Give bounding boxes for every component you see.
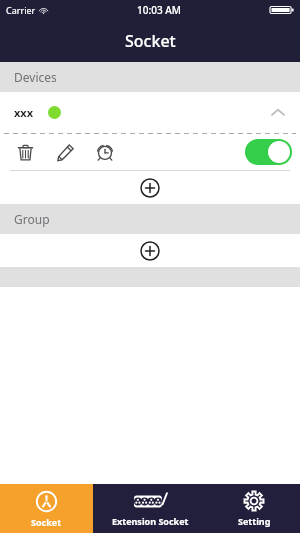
staticText: Setting [238, 515, 271, 527]
button[interactable]: Socket [0, 484, 93, 533]
staticText: Devices [14, 69, 57, 85]
button[interactable]: Setting [208, 484, 300, 533]
staticText: Socket [31, 516, 62, 528]
button[interactable]: Add [136, 237, 164, 265]
staticText: Socket [125, 30, 176, 52]
staticText: 10:03 AM [137, 3, 181, 17]
staticText: Extension Socket [112, 515, 189, 527]
button[interactable]: xxx [0, 92, 300, 133]
staticText: Carrier [6, 4, 36, 16]
button[interactable]: Add [136, 174, 164, 202]
staticText: xxx [14, 105, 34, 120]
button[interactable]: Extension Socket [93, 484, 208, 533]
other: Collapse [270, 105, 286, 121]
button[interactable]: Timer [90, 137, 120, 167]
staticText: Group [14, 211, 50, 227]
button[interactable]: Edit [50, 137, 80, 167]
button[interactable]: Power toggle [245, 139, 292, 165]
button[interactable]: Delete [10, 137, 40, 167]
